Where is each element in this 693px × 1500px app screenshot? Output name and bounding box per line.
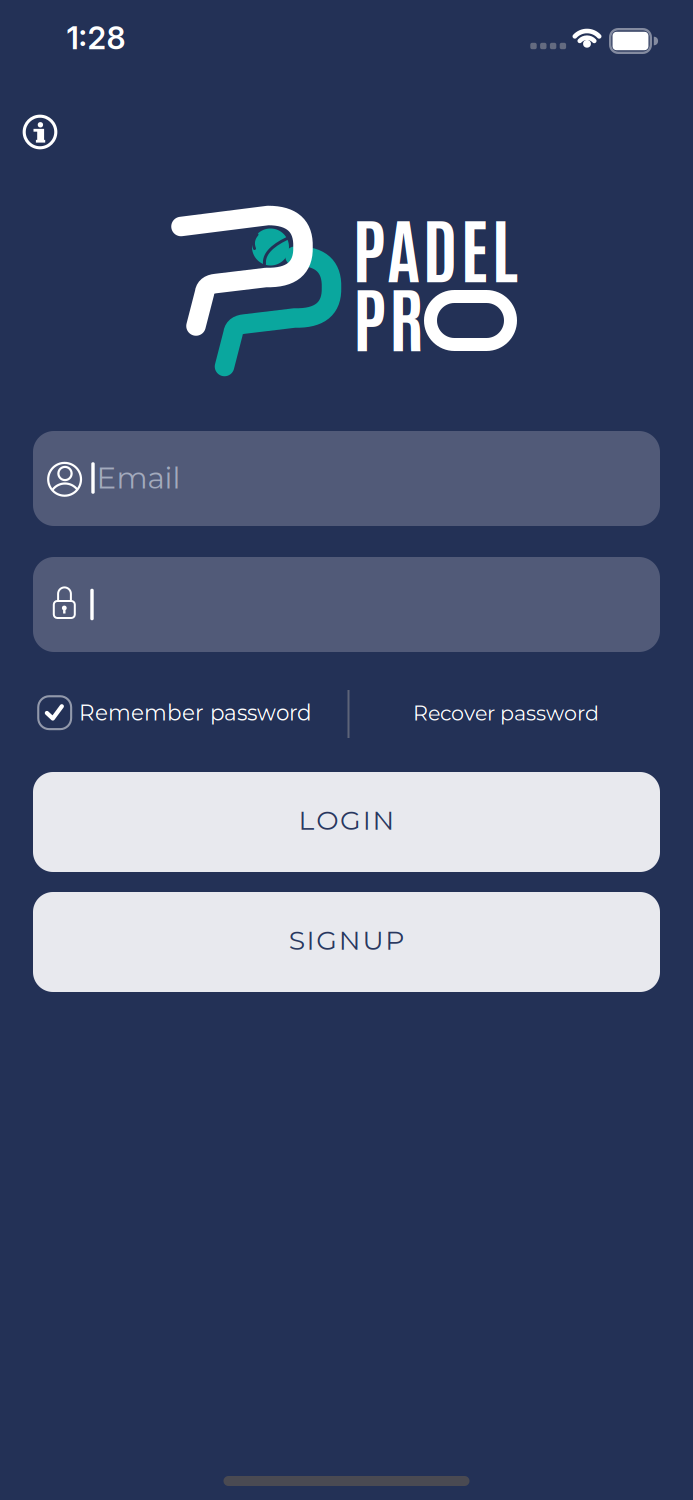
staticText: N: [339, 924, 361, 956]
button[interactable]: Remember password: [37, 695, 317, 731]
button[interactable]: S: [33, 892, 660, 992]
staticText: PADEL: [352, 200, 517, 292]
button[interactable]: Email: [33, 431, 660, 526]
button[interactable]: Info: [18, 110, 62, 154]
staticText: I: [306, 924, 314, 956]
staticText: P: [385, 924, 404, 956]
staticText: PR: [353, 269, 423, 361]
button[interactable]: Password: [33, 557, 660, 652]
staticText: N: [372, 804, 394, 836]
staticText: G: [340, 804, 361, 836]
staticText: U: [363, 924, 384, 956]
button[interactable]: Recover password: [413, 700, 599, 726]
staticText: L: [299, 804, 315, 836]
staticText: 1:28: [66, 19, 125, 56]
staticText: G: [316, 924, 337, 956]
staticText: Email: [96, 460, 180, 496]
staticText: O: [316, 804, 338, 836]
staticText: S: [289, 924, 305, 956]
staticText: Remember password: [79, 700, 312, 726]
staticText: Recover password: [413, 700, 599, 726]
button[interactable]: L: [33, 772, 660, 872]
staticText: I: [363, 804, 371, 836]
